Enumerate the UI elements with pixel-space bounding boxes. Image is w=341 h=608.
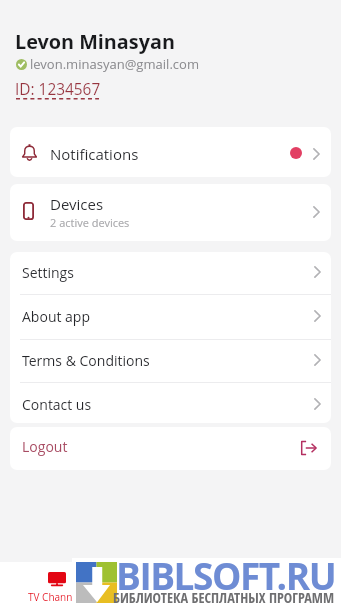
other: Logout — [300, 440, 317, 456]
staticText: ID: 1234567 — [15, 79, 101, 100]
button[interactable]: TV Channels — [17, 562, 97, 608]
staticText: Movies — [155, 590, 188, 604]
button[interactable]: Contact us — [10, 383, 331, 423]
button[interactable]: Logout — [10, 427, 331, 470]
staticText: БИБЛИОТЕКА БЕСПЛАТНЫХ ПРОГРАММ — [113, 588, 335, 607]
staticText: Notifications — [50, 144, 139, 164]
button[interactable]: About app — [10, 295, 331, 339]
staticText: Devices — [50, 194, 104, 214]
staticText: Contact us — [22, 395, 92, 414]
staticText: Profile — [269, 590, 299, 604]
staticText: Levon Minasyan — [15, 28, 175, 55]
button[interactable]: Settings — [10, 252, 331, 294]
staticText: Settings — [22, 263, 74, 282]
staticText: levon.minasyan@gmail.com — [30, 55, 199, 73]
button[interactable]: Terms & Conditions — [10, 340, 331, 382]
staticText: Terms & Conditions — [22, 351, 150, 370]
staticText: About app — [22, 307, 91, 326]
staticText: 2 active devices — [50, 215, 130, 230]
button[interactable]: Notifications — [10, 127, 331, 177]
staticText: TV Channels — [28, 590, 86, 604]
staticText: BIBLSOFT.RU — [116, 550, 336, 600]
button[interactable]: Devices — [10, 184, 331, 241]
staticText: Logout — [22, 437, 68, 456]
button[interactable]: Movies — [131, 562, 211, 608]
button[interactable]: Profile — [244, 562, 324, 608]
